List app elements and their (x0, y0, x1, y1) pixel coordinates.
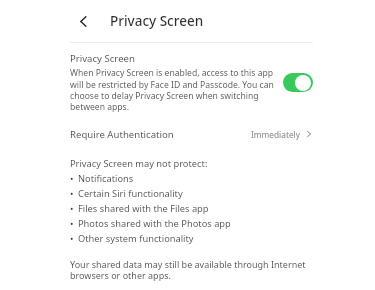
staticText: Your shared data may still be available … (70, 258, 313, 282)
staticText: Require Authentication (70, 128, 251, 141)
staticText: • (70, 187, 74, 200)
staticText: When Privacy Screen is enabled, access t… (70, 67, 274, 112)
button[interactable]: Back (70, 8, 96, 34)
staticText: • (70, 232, 74, 245)
staticText: • (70, 202, 74, 215)
staticText: • (70, 217, 74, 230)
staticText: Privacy Screen (70, 52, 135, 65)
button[interactable]: Privacy Screen, on (283, 73, 313, 92)
staticText: Photos shared with the Photos app (78, 217, 231, 230)
staticText: Certain Siri functionality (78, 187, 183, 200)
staticText: Immediately (251, 129, 300, 140)
staticText: • (70, 172, 74, 185)
button[interactable]: Privacy Screen (70, 52, 313, 112)
staticText: Files shared with the Files app (78, 202, 209, 215)
staticText: Other system functionality (78, 232, 194, 245)
staticText: Privacy Screen (110, 12, 204, 30)
staticText: Privacy Screen may not protect: (70, 157, 208, 170)
button[interactable]: Require Authentication (70, 125, 313, 143)
staticText: Notifications (78, 172, 134, 185)
